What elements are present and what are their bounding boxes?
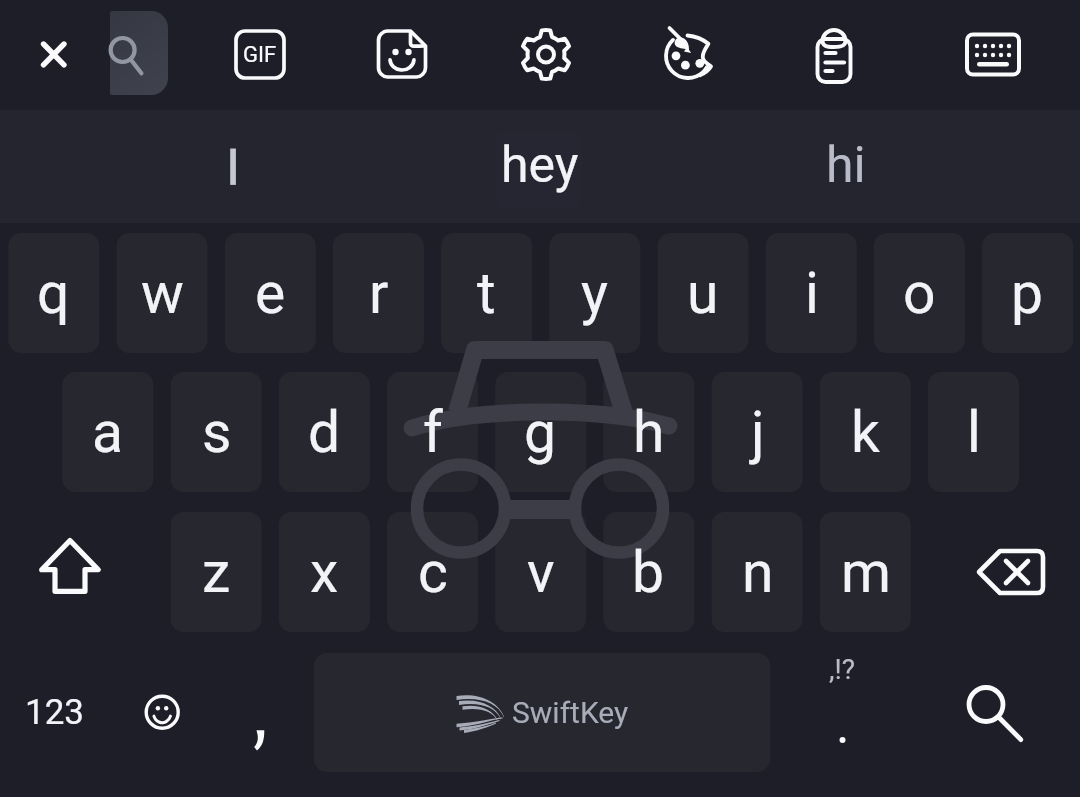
button[interactable]: Emoji [117, 653, 203, 772]
button[interactable]: y [549, 233, 640, 353]
button[interactable]: i [766, 233, 857, 353]
button[interactable]: x [279, 512, 370, 632]
staticText: g [524, 399, 557, 466]
button[interactable]: b [603, 512, 694, 632]
staticText: hi [826, 136, 866, 195]
button[interactable]: Comma [210, 653, 310, 772]
button[interactable]: hi [756, 110, 936, 220]
button[interactable]: l [928, 372, 1019, 492]
staticText: d [308, 399, 341, 466]
staticText: h [633, 399, 665, 466]
staticText: s [202, 399, 232, 466]
button[interactable]: e [225, 233, 316, 353]
button[interactable]: h [603, 372, 694, 492]
staticText: z [202, 539, 231, 606]
button[interactable]: f [387, 372, 478, 492]
button[interactable]: Keyboard modes [938, 0, 1048, 110]
staticText: c [418, 539, 448, 606]
button[interactable]: a [62, 372, 153, 492]
staticText: i [805, 260, 819, 327]
button[interactable]: Clipboard [779, 0, 889, 110]
button[interactable]: q [8, 233, 99, 353]
button[interactable]: s [171, 372, 262, 492]
button[interactable]: Stickers [347, 0, 457, 110]
staticText: j [751, 399, 765, 466]
button[interactable]: w [117, 233, 208, 353]
staticText: r [369, 260, 389, 327]
staticText: b [632, 539, 665, 606]
staticText: a [92, 399, 124, 466]
staticText: w [141, 260, 184, 327]
staticText: o [903, 260, 936, 327]
button[interactable]: j [712, 372, 803, 492]
staticText: e [255, 260, 286, 327]
staticText: v [527, 539, 555, 606]
button[interactable]: n [712, 512, 803, 632]
staticText: n [742, 539, 774, 606]
button[interactable]: z [171, 512, 262, 632]
button[interactable]: o [874, 233, 965, 353]
button[interactable]: r [333, 233, 424, 353]
button[interactable]: SwiftKey [314, 651, 770, 772]
button[interactable]: Themes [633, 0, 743, 110]
staticText: p [1011, 260, 1044, 327]
button[interactable]: v [495, 512, 586, 632]
button[interactable]: hey [450, 110, 630, 220]
button[interactable]: k [820, 372, 911, 492]
staticText: q [37, 260, 70, 327]
button[interactable]: Settings [491, 0, 601, 110]
button[interactable]: ,!? [792, 653, 892, 772]
button[interactable]: g [495, 372, 586, 492]
button[interactable]: I [152, 112, 312, 222]
button[interactable]: t [441, 233, 532, 353]
staticText: k [851, 399, 880, 466]
button[interactable]: d [279, 372, 370, 492]
staticText: l [967, 399, 981, 466]
button[interactable]: 123 [0, 653, 109, 772]
button[interactable]: Close keyboard [3, 0, 103, 110]
staticText: f [423, 399, 443, 466]
button[interactable]: c [387, 512, 478, 632]
button[interactable]: GIF [205, 0, 315, 110]
button[interactable]: u [657, 233, 748, 353]
button[interactable]: Search [103, 0, 175, 110]
staticText: y [581, 260, 608, 327]
staticText: x [310, 539, 339, 606]
staticText: hey [501, 136, 579, 195]
button[interactable]: p [982, 233, 1073, 353]
staticText: ,!? [829, 653, 855, 686]
staticText: 123 [25, 692, 85, 733]
button[interactable]: Search [896, 653, 1080, 772]
staticText: GIF [243, 42, 277, 68]
button[interactable]: m [820, 512, 911, 632]
staticText: t [477, 260, 496, 327]
staticText: SwiftKey [512, 695, 629, 730]
staticText: u [687, 260, 719, 327]
staticText: m [841, 539, 891, 606]
